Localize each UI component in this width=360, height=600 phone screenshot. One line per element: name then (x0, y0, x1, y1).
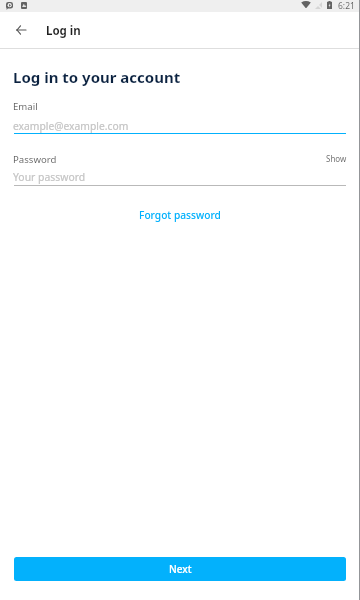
button[interactable]: Password (14, 151, 346, 186)
button[interactable]: Navigate back (8, 17, 33, 42)
staticText: Password (13, 153, 57, 166)
staticText: Your password (13, 170, 86, 184)
staticText: Email (13, 100, 38, 113)
staticText: Show (326, 153, 347, 164)
staticText: example@example.com (13, 119, 129, 133)
button[interactable]: Forgot password (131, 204, 229, 226)
staticText: 6:21 (338, 0, 355, 12)
button[interactable]: Show (318, 150, 348, 166)
staticText: Log in to your account (13, 67, 181, 87)
button[interactable]: Email (14, 98, 346, 134)
button[interactable]: Next (14, 557, 346, 581)
staticText: Next (169, 562, 192, 576)
staticText: Log in (46, 23, 81, 39)
